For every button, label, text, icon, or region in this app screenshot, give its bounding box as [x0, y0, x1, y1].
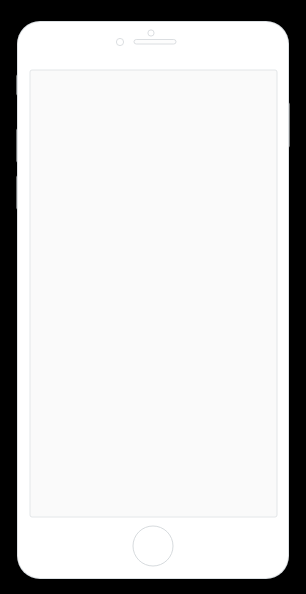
button[interactable]: Phone device mockup with blank screen — [0, 0, 306, 594]
